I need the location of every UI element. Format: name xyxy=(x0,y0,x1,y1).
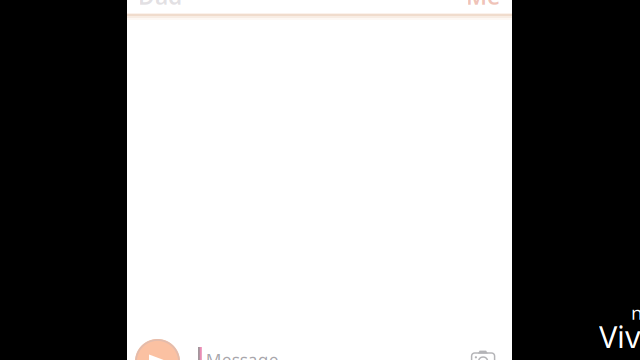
staticText: Viv xyxy=(599,316,640,357)
button[interactable]: Dad xyxy=(127,0,198,7)
staticText: Dad xyxy=(138,0,182,11)
button[interactable]: Camera xyxy=(472,349,495,360)
staticText: n xyxy=(631,300,640,325)
button[interactable]: Record video message xyxy=(135,339,180,360)
staticText: Message xyxy=(206,348,279,360)
button[interactable]: Message xyxy=(198,339,450,360)
staticText: Me xyxy=(466,0,500,11)
button[interactable]: Me xyxy=(440,0,512,7)
